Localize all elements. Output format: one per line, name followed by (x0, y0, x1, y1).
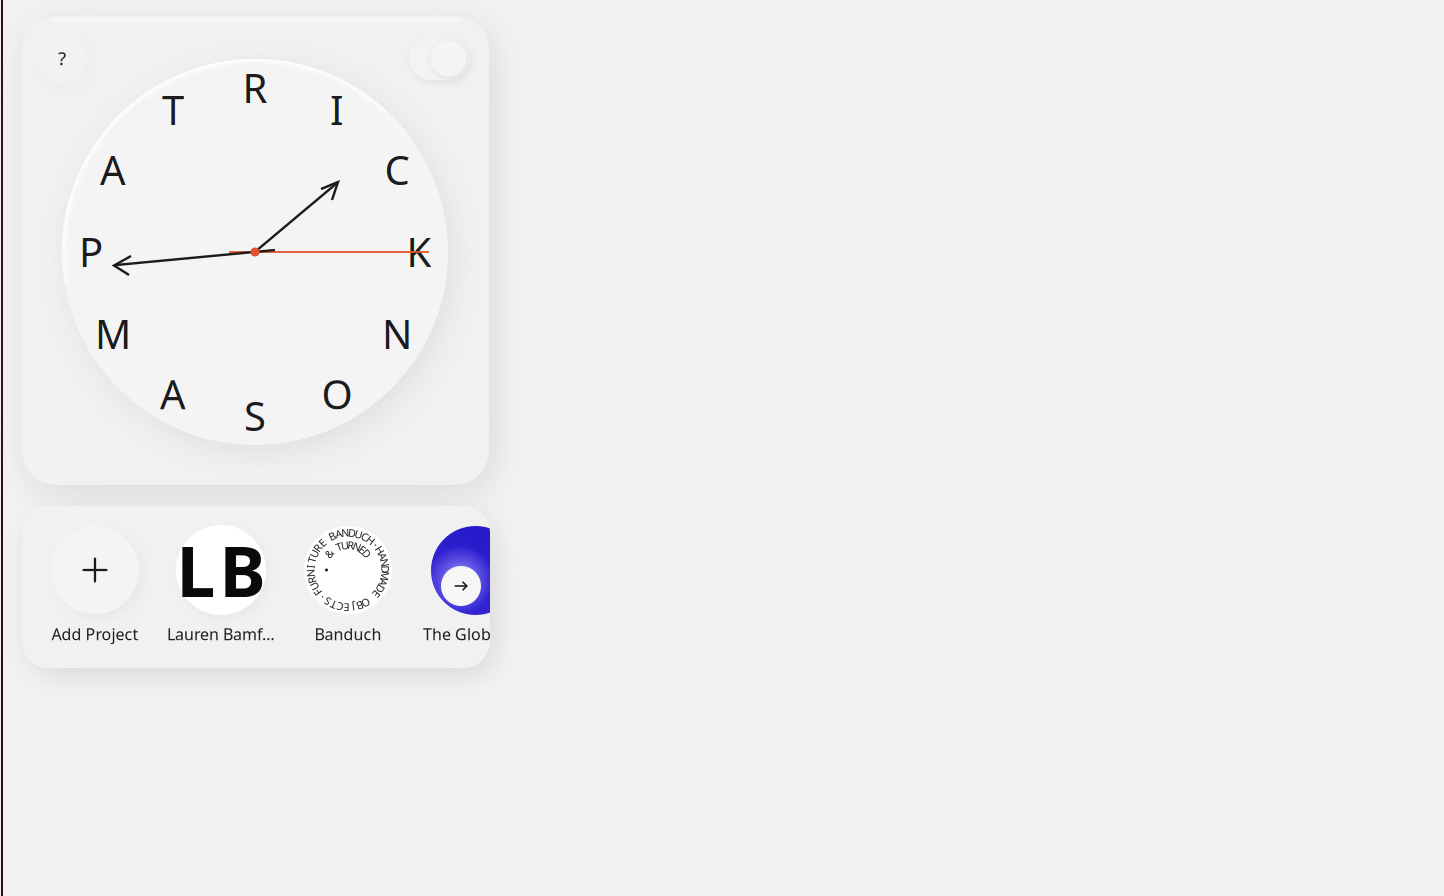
staticText: E (359, 542, 365, 557)
staticText: B (329, 529, 336, 543)
staticText: A (380, 576, 387, 590)
staticText: T (336, 540, 342, 554)
staticText: C (336, 599, 343, 614)
staticText: N (307, 566, 315, 580)
staticText: A (379, 549, 386, 563)
staticText: U (310, 579, 318, 593)
staticText: O (362, 596, 370, 610)
button[interactable]: L (158, 526, 284, 646)
staticText: B (356, 598, 363, 613)
staticText: C (361, 529, 368, 544)
staticText: U (341, 538, 349, 552)
staticText: & (325, 546, 333, 561)
staticText: U (355, 527, 363, 541)
staticText: D (348, 526, 356, 540)
staticText: N (382, 307, 412, 360)
staticText: P (79, 225, 103, 278)
staticText: I (309, 559, 313, 574)
staticText: N (381, 556, 389, 570)
button[interactable]: B (285, 526, 411, 646)
staticText: ? (58, 46, 66, 70)
staticText: E (343, 600, 349, 615)
staticText: S (244, 389, 266, 442)
staticText: Banduch (314, 623, 381, 645)
staticText: I (330, 83, 344, 136)
staticText: B (219, 524, 265, 616)
staticText: · (321, 590, 324, 604)
staticText: The Global (423, 623, 504, 645)
staticText: H (367, 533, 375, 547)
staticText (370, 592, 373, 606)
button[interactable]: Toggle widget (409, 37, 470, 80)
staticText: R (347, 538, 354, 552)
staticText: S (324, 594, 330, 608)
staticText: C (384, 143, 409, 196)
button[interactable]: Add Project (32, 526, 158, 646)
staticText: M (95, 307, 131, 360)
staticText: A (160, 367, 186, 420)
button[interactable]: The Global (415, 526, 536, 647)
staticText: L (176, 524, 215, 616)
staticText: M (380, 569, 390, 583)
staticText: N (353, 540, 361, 554)
staticText: N (341, 525, 349, 540)
staticText: Lauren Bamf… (167, 623, 275, 645)
staticText: D (376, 582, 384, 596)
staticText: R (308, 573, 315, 587)
staticText: R (314, 541, 321, 555)
staticText: T (309, 553, 315, 567)
staticText: A (335, 527, 342, 541)
staticText: D (363, 546, 371, 561)
staticText: E (319, 536, 325, 550)
staticText: D (381, 562, 389, 576)
staticText: Add Project (51, 623, 138, 645)
staticText: J (352, 600, 355, 614)
staticText: T (162, 83, 184, 136)
staticText: H (376, 543, 384, 557)
staticText: A (100, 143, 126, 196)
staticText: K (406, 225, 431, 278)
staticText: T (330, 597, 336, 612)
staticText: · (374, 538, 377, 552)
staticText: R (242, 61, 267, 114)
button[interactable]: Help (36, 32, 88, 84)
staticText: O (321, 367, 352, 420)
staticText (332, 542, 335, 557)
staticText: E (373, 587, 379, 601)
staticText: U (310, 546, 318, 561)
staticText: F (315, 585, 321, 599)
